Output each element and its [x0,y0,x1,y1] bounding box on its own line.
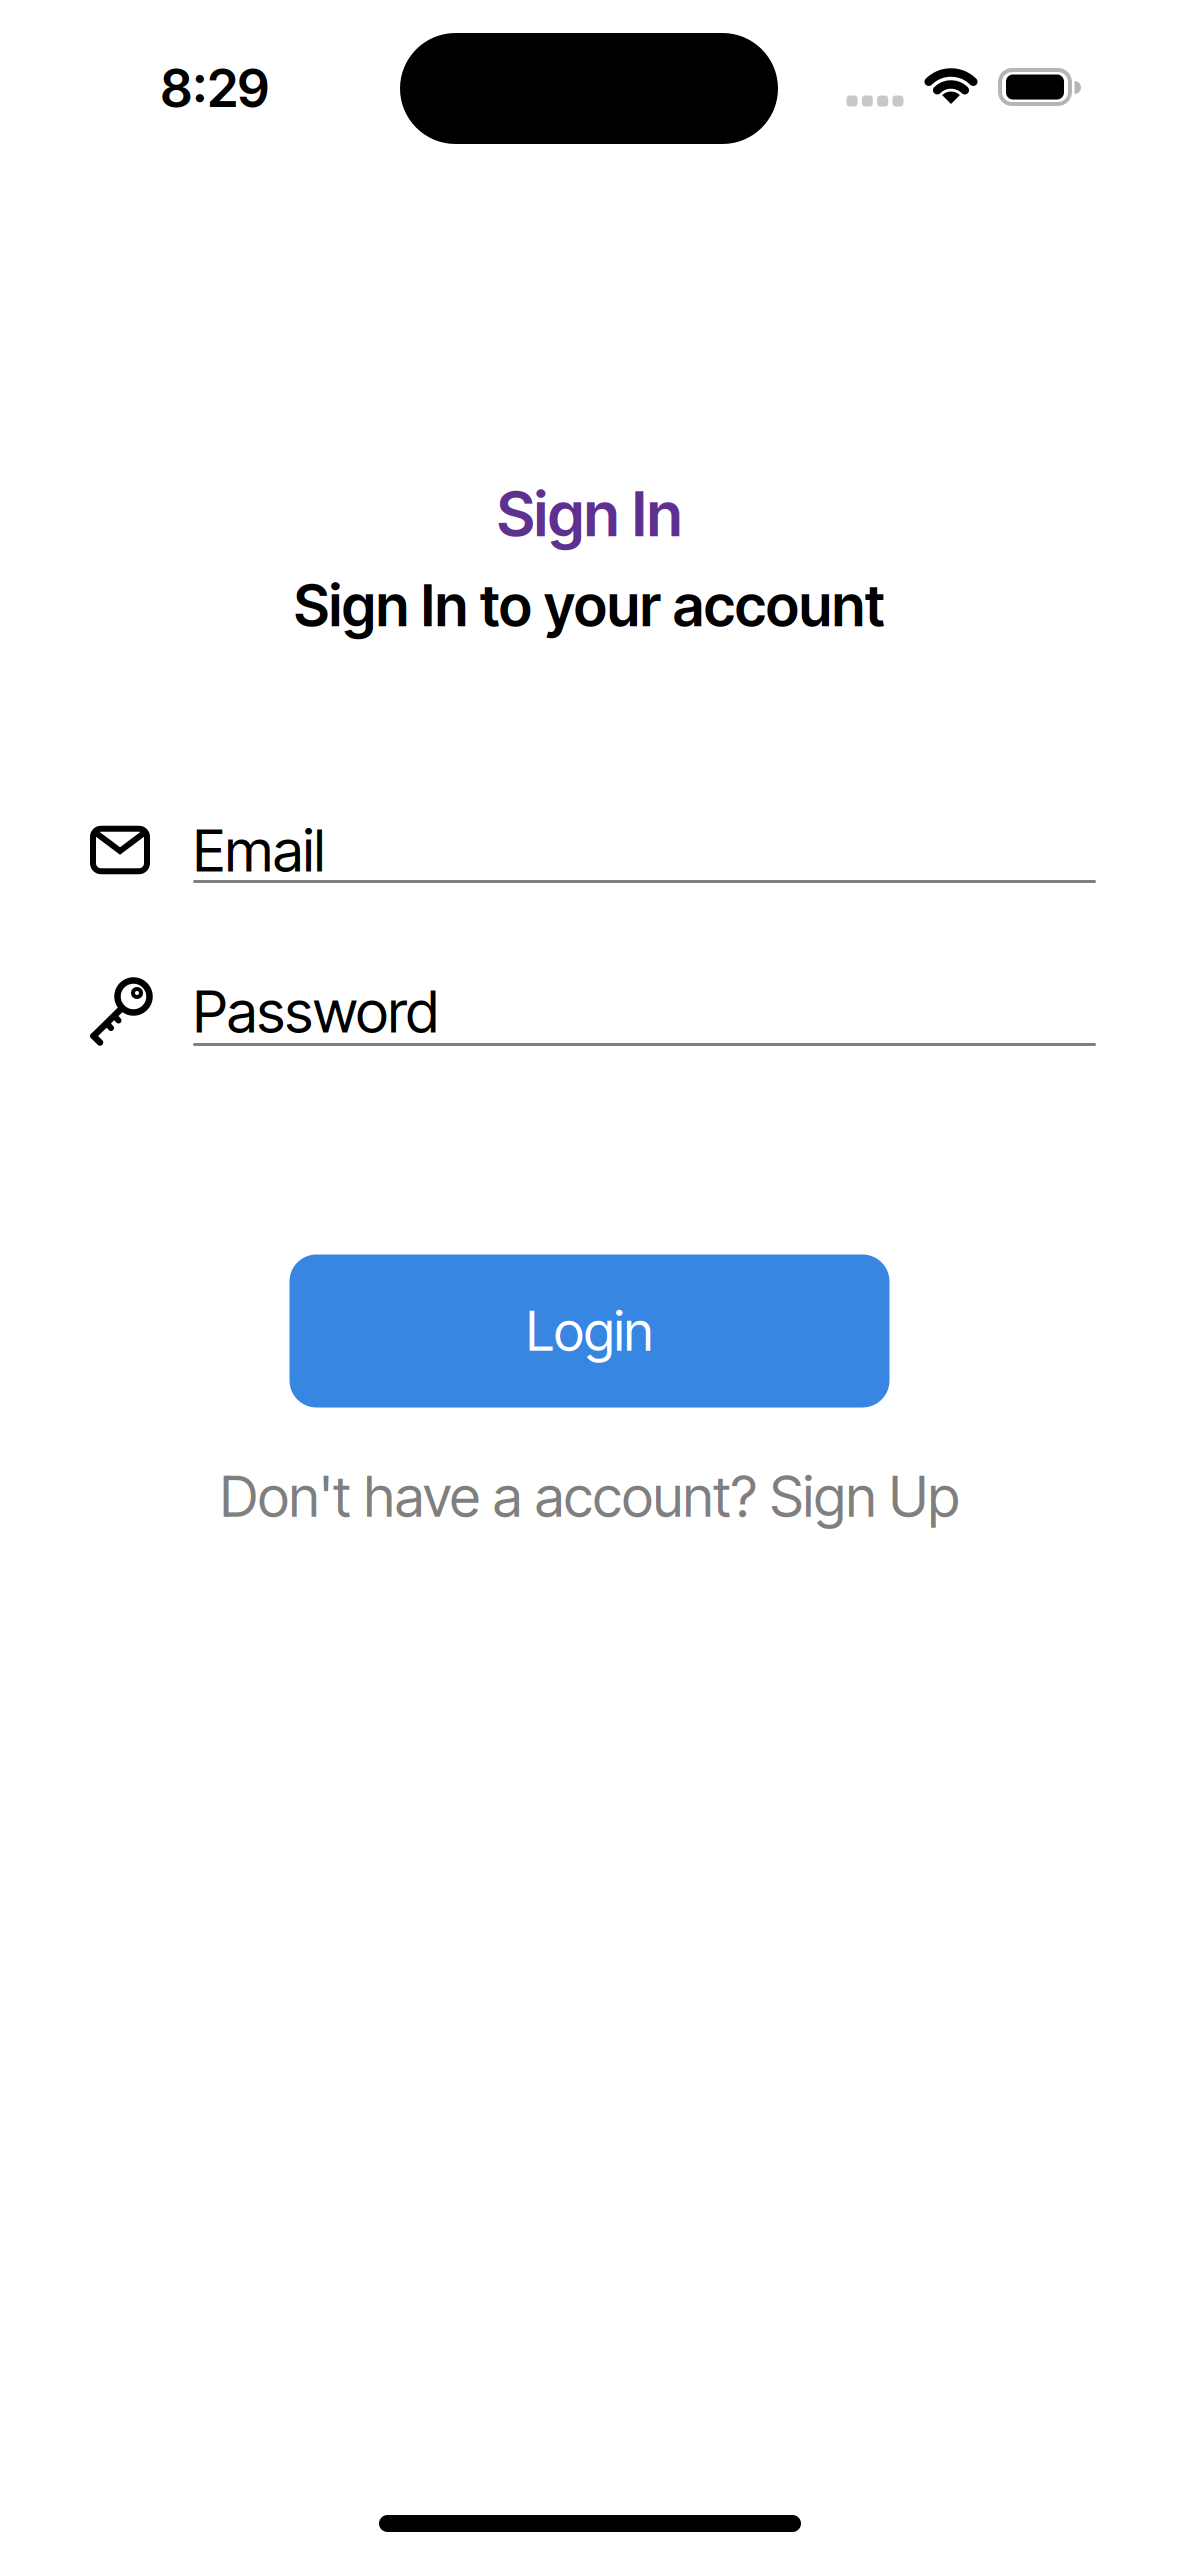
staticText: 8:29 [160,56,269,119]
button[interactable]: Don't have a account? Sign Up [220,1463,959,1530]
staticText: Email [193,815,325,886]
button[interactable]: Email [88,820,1098,886]
staticText: Login [526,1298,653,1364]
button[interactable]: Password [88,974,1098,1054]
staticText: Password [193,976,439,1047]
staticText: Sign In [497,477,682,551]
staticText: Sign In to your account [294,571,885,640]
staticText: Don't have a account? Sign Up [220,1463,959,1530]
button[interactable]: Login [289,1254,889,1407]
